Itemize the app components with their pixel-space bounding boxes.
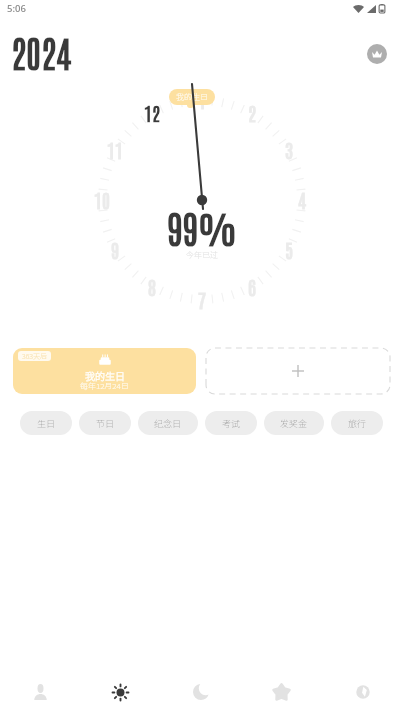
button[interactable]: Profile [0,665,80,719]
staticText: 今年已过 [186,249,218,261]
staticText: 7 [198,287,206,312]
button[interactable]: 发奖金 [264,411,324,435]
staticText: 3 [285,137,293,162]
staticText: 生日 [37,417,56,430]
staticText: 旅行 [348,417,367,430]
staticText: 4 [298,187,306,212]
button[interactable]: 363天后 [13,348,196,394]
staticText: 5:06 [7,2,26,15]
staticText: 10 [94,187,110,212]
staticText: 每年12月24日 [80,380,129,392]
staticText: 发奖金 [280,417,308,430]
staticText: 节日 [96,417,115,430]
staticText: 8 [148,274,156,299]
staticText: 99% [167,203,238,248]
staticText: 12 [144,100,160,125]
button[interactable]: Today [80,665,160,719]
staticText: 纪念日 [154,417,182,430]
button[interactable]: Premium [367,44,387,64]
button[interactable]: 旅行 [331,411,383,435]
button[interactable]: 节日 [79,411,131,435]
staticText: 1 [198,87,206,112]
button[interactable]: Add event [206,348,390,394]
button[interactable]: 纪念日 [138,411,198,435]
staticText: 考试 [222,417,241,430]
staticText: 我的生日 [176,91,208,103]
button[interactable]: Night [160,665,241,719]
staticText: 6 [248,274,256,299]
staticText: 2024 [11,28,72,75]
staticText: 9 [111,237,119,262]
staticText: 2 [248,100,256,125]
button[interactable]: 考试 [205,411,257,435]
staticText: 363天后 [22,351,47,361]
staticText: 11 [107,137,123,162]
staticText: 5 [285,237,293,262]
button[interactable]: 生日 [20,411,72,435]
button[interactable]: Favorites [241,665,322,719]
staticText: 我的生日 [85,368,125,382]
button[interactable]: World [322,665,403,719]
